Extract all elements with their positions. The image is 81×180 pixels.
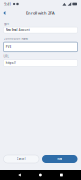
button[interactable]: Back — [1, 9, 8, 17]
staticText: Type — [3, 22, 9, 25]
staticText: PVE — [6, 45, 11, 49]
staticText: 9:41 — [4, 1, 11, 7]
button[interactable]: Cancel — [3, 155, 39, 163]
button[interactable]: Next — [42, 155, 77, 163]
button[interactable]: PVE — [3, 42, 77, 52]
button[interactable]: Back — [18, 173, 21, 176]
button[interactable]: Home — [39, 174, 42, 176]
staticText: Enroll with 2FA — [26, 10, 55, 16]
staticText: Connection Name — [3, 37, 28, 40]
staticText: https:// — [6, 61, 16, 65]
staticText: Next — [57, 157, 62, 161]
staticText: New Email Account — [6, 28, 30, 32]
staticText: URL — [3, 55, 8, 58]
button[interactable]: https:// — [3, 60, 77, 66]
button[interactable]: New Email Account — [3, 27, 77, 33]
staticText: Cancel — [17, 157, 26, 161]
button[interactable]: Recent apps — [60, 174, 63, 176]
